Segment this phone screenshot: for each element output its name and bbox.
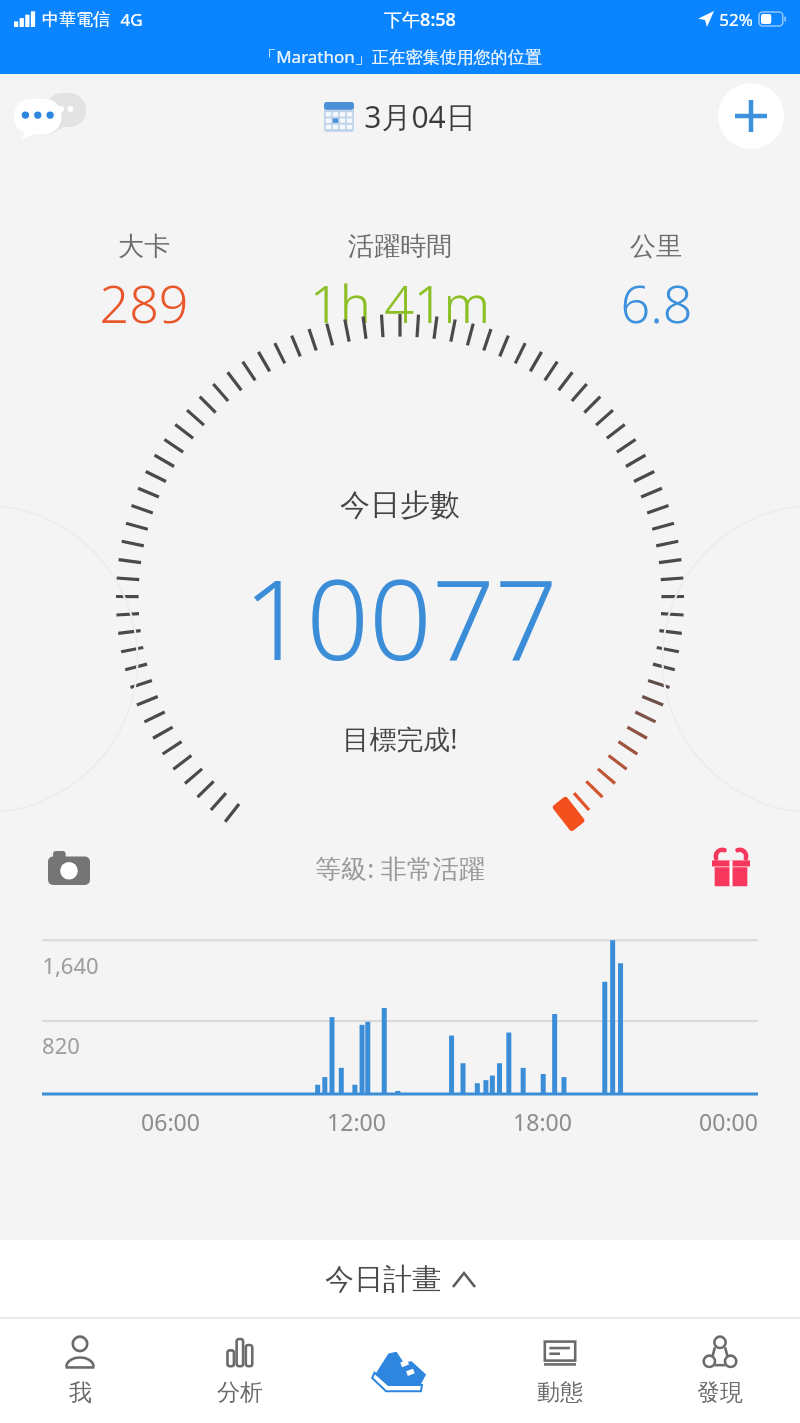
staticText: 6.8 — [620, 267, 693, 338]
staticText: 820 — [42, 1030, 80, 1060]
staticText: 289 — [99, 267, 189, 338]
staticText: 52% — [719, 8, 753, 31]
staticText: 10077 — [243, 542, 558, 692]
staticText: 我 — [69, 1378, 92, 1407]
staticText: 18:00 — [513, 1106, 572, 1137]
staticText: 3月04日 — [364, 96, 476, 137]
staticText: 4G — [120, 8, 143, 31]
button[interactable]: 活躍時間 — [257, 230, 542, 338]
button[interactable]: Add — [718, 83, 784, 149]
button[interactable]: 大卡 — [30, 230, 257, 338]
staticText: 目標完成! — [342, 720, 458, 757]
button[interactable]: 今日步數 — [0, 356, 800, 826]
staticText: 12:00 — [327, 1106, 386, 1137]
staticText: 發現 — [697, 1378, 743, 1407]
button[interactable]: Messages — [12, 86, 88, 146]
staticText: 公里 — [630, 230, 682, 263]
staticText: 06:00 — [141, 1106, 200, 1137]
staticText: 00:00 — [699, 1106, 758, 1137]
staticText: 活躍時間 — [348, 230, 452, 263]
staticText: 大卡 — [118, 230, 170, 263]
staticText: 「Marathon」正在密集使用您的位置 — [259, 45, 542, 68]
button[interactable]: 公里 — [542, 230, 770, 338]
staticText: 動態 — [537, 1378, 583, 1407]
staticText: 今日步數 — [340, 486, 460, 524]
button[interactable]: 分析 — [160, 1318, 320, 1423]
button[interactable]: Rewards — [706, 843, 756, 893]
button[interactable]: 今日計畫 — [0, 1240, 800, 1318]
staticText: 等級: 非常活躍 — [315, 850, 485, 886]
staticText: 1h 41m — [310, 267, 490, 338]
staticText: 中華電信 — [42, 9, 110, 30]
staticText: 1,640 — [42, 950, 99, 980]
staticText: 下午8:58 — [384, 7, 456, 32]
button[interactable]: 我 — [0, 1318, 160, 1423]
button[interactable]: 發現 — [640, 1318, 800, 1423]
button[interactable]: Steps — [320, 1318, 480, 1423]
button[interactable]: 動態 — [480, 1318, 640, 1423]
button[interactable]: Camera — [44, 843, 94, 893]
button[interactable]: 3月04日 — [324, 96, 476, 137]
staticText: 分析 — [217, 1378, 263, 1407]
staticText: 今日計畫 — [325, 1261, 441, 1298]
